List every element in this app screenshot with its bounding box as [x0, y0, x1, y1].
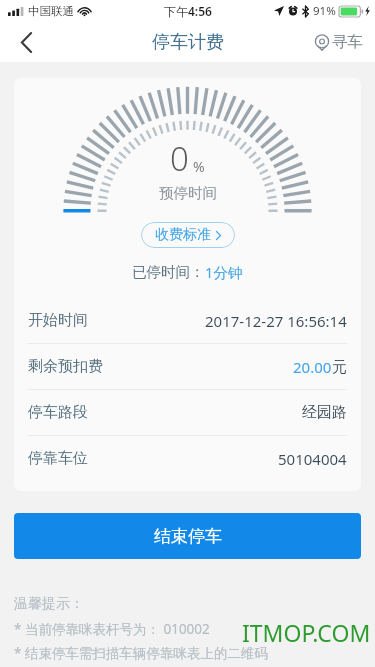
- staticText: 0: [170, 136, 189, 181]
- staticText: 停车路段: [28, 403, 88, 422]
- staticText: 20.00: [293, 357, 332, 377]
- button[interactable]: 结束停车: [14, 513, 361, 559]
- staticText: 1分钟: [205, 262, 243, 282]
- staticText: * 当前停靠咪表杆号为： 010002: [14, 620, 210, 638]
- staticText: 收费标准: [155, 226, 211, 244]
- button[interactable]: 停车路段: [14, 390, 361, 435]
- staticText: ITMOP.COM: [242, 617, 371, 648]
- staticText: 寻车: [332, 32, 363, 52]
- staticText: 中国联通: [28, 4, 74, 18]
- staticText: 剩余预扣费: [28, 357, 103, 376]
- staticText: 停靠车位: [28, 449, 88, 468]
- button[interactable]: 开始时间: [14, 298, 361, 343]
- staticText: %: [193, 157, 205, 176]
- staticText: 下午4:56: [164, 3, 212, 19]
- staticText: 预停时间: [159, 184, 217, 202]
- staticText: 已停时间：: [132, 263, 205, 281]
- staticText: 元: [332, 358, 347, 377]
- staticText: 温馨提示：: [14, 595, 84, 613]
- staticText: 停车计费: [152, 31, 224, 54]
- staticText: 开始时间: [28, 311, 88, 330]
- staticText: 50104004: [278, 449, 347, 469]
- button[interactable]: 寻车: [303, 22, 375, 62]
- button[interactable]: 剩余预扣费: [14, 344, 361, 389]
- staticText: 91%: [313, 3, 336, 19]
- staticText: * 结束停车需扫描车辆停靠咪表上的二维码: [14, 644, 268, 662]
- button[interactable]: 停靠车位: [14, 436, 361, 481]
- staticText: 结束停车: [154, 526, 222, 547]
- button[interactable]: 收费标准: [141, 222, 235, 248]
- staticText: 2017-12-27 16:56:14: [205, 311, 347, 331]
- staticText: 经园路: [302, 403, 347, 422]
- button[interactable]: Back: [0, 22, 52, 62]
